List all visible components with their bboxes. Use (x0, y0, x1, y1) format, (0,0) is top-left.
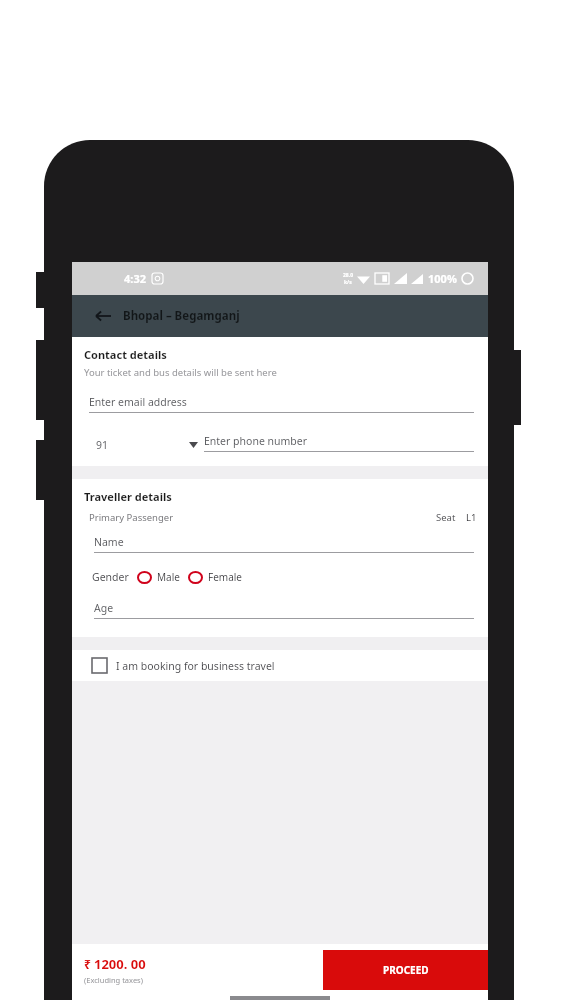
button[interactable]: Back (92, 305, 114, 327)
staticText: Seat (436, 511, 456, 524)
staticText: I am booking for business travel (116, 659, 275, 673)
staticText: 91 (96, 438, 109, 452)
staticText: 1200. 00 (94, 955, 146, 973)
staticText: Your ticket and bus details will be sent… (84, 366, 277, 379)
staticText: 4:32 (124, 271, 146, 286)
button[interactable]: Age (94, 601, 474, 619)
button[interactable]: Enter email address (89, 395, 474, 413)
staticText: Gender (92, 570, 129, 584)
button[interactable]: PROCEED (323, 950, 488, 990)
button[interactable]: Female (188, 570, 243, 584)
staticText: Age (94, 601, 114, 615)
button[interactable]: I am booking for business travel (72, 650, 488, 681)
staticText: Female (208, 570, 243, 584)
button[interactable]: Back (72, 295, 488, 337)
other: Country code (189, 442, 198, 448)
staticText: Enter email address (89, 395, 187, 409)
staticText: Name (94, 535, 124, 549)
button[interactable]: 91 (84, 438, 204, 452)
staticText: k/s (344, 279, 352, 286)
staticText: Primary Passenger (89, 511, 174, 524)
staticText: Contact details (84, 347, 167, 362)
button[interactable]: Name (94, 535, 474, 553)
button[interactable]: Male (137, 570, 180, 584)
staticText: 100% (428, 271, 457, 286)
staticText: 28.0 (343, 272, 353, 279)
staticText: PROCEED (383, 963, 429, 977)
staticText: L1 (466, 511, 477, 524)
button[interactable]: Enter phone number (204, 434, 474, 452)
staticText: (Excluding taxes) (84, 975, 143, 985)
staticText: Traveller details (84, 489, 172, 504)
staticText: Male (157, 570, 180, 584)
staticText: Bhopal – Begamganj (123, 308, 240, 324)
staticText: Enter phone number (204, 434, 308, 448)
staticText: ₹ (84, 956, 91, 972)
